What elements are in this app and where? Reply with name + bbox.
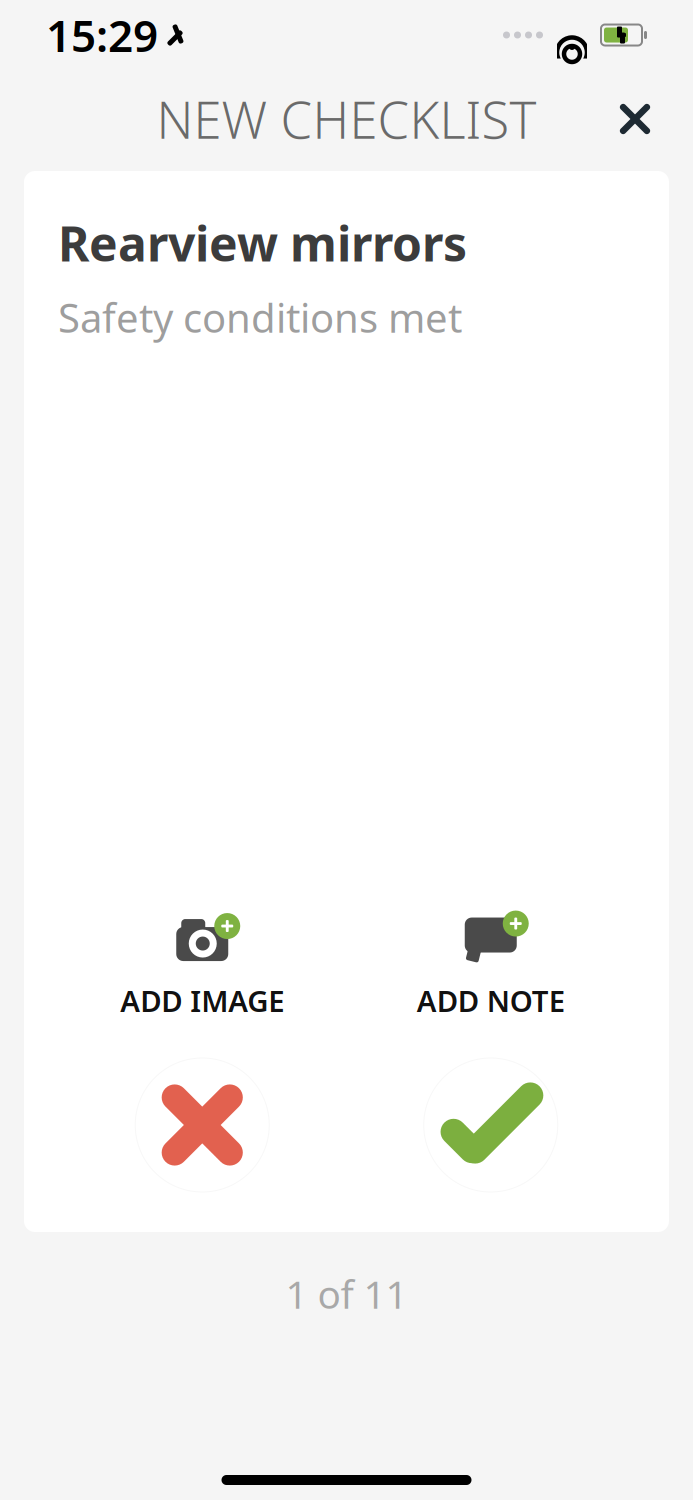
staticText: NEW CHECKLIST: [156, 85, 536, 153]
staticText: 1 of 11: [285, 1268, 407, 1319]
staticText: 15:29: [46, 6, 158, 64]
button[interactable]: Close: [599, 83, 671, 155]
button[interactable]: ADD IMAGE: [58, 909, 346, 1028]
staticText: ADD NOTE: [417, 981, 565, 1020]
staticText: ADD IMAGE: [120, 981, 284, 1020]
button[interactable]: Fail: [58, 1050, 346, 1200]
button[interactable]: ADD NOTE: [346, 909, 635, 1028]
staticText: Rearview mirrors: [58, 211, 467, 275]
staticText: Safety conditions met: [58, 291, 462, 344]
button[interactable]: Pass: [346, 1050, 635, 1200]
